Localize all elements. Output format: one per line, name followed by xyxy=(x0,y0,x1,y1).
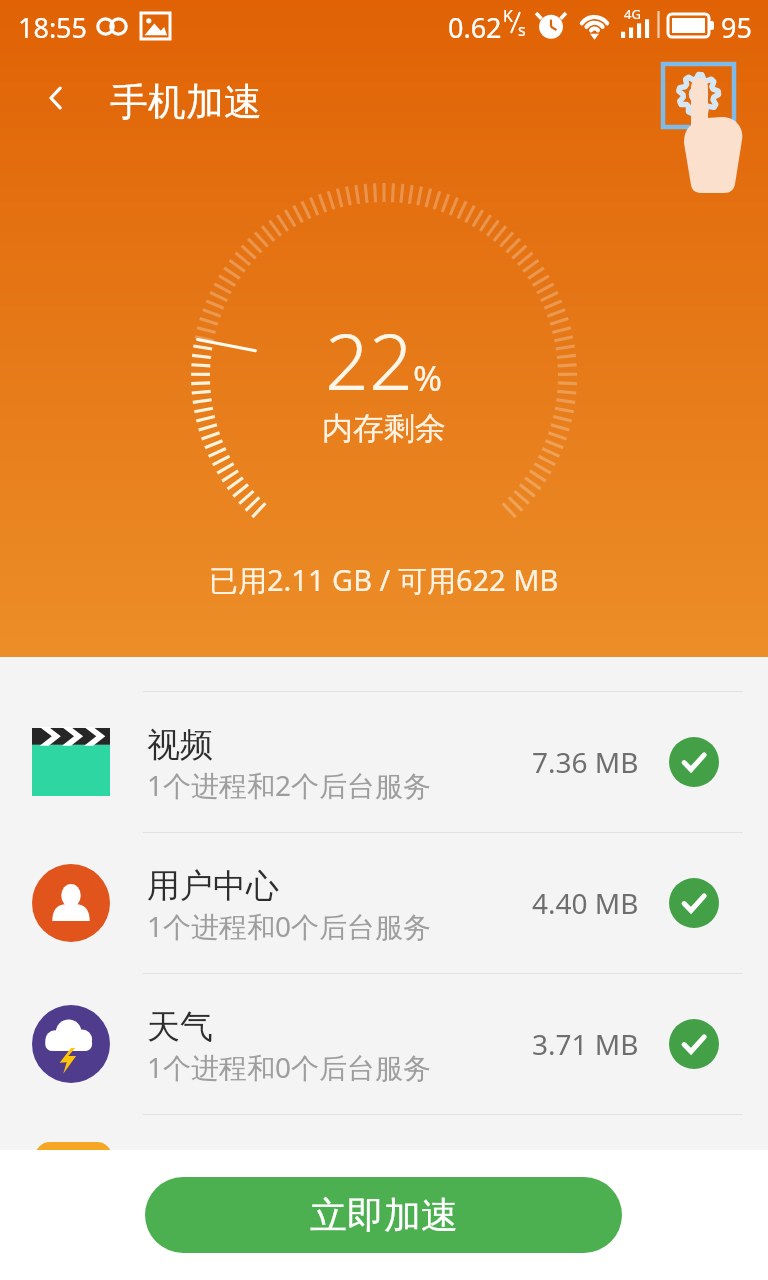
staticText: 用户中心 xyxy=(147,865,279,907)
staticText: 0.62 xyxy=(448,9,502,46)
staticText: 95 xyxy=(721,9,752,46)
staticText: 内存剩余 xyxy=(322,409,446,448)
button[interactable]: Selected, toggle 天气 xyxy=(669,1019,719,1069)
staticText: 3.71 MB xyxy=(532,1025,639,1063)
button[interactable]: Back xyxy=(26,68,86,128)
staticText: % xyxy=(413,354,443,402)
staticText: 视频 xyxy=(147,724,213,766)
button[interactable]: 立即加速 xyxy=(145,1177,622,1253)
staticText: 1个进程和0个后台服务 xyxy=(147,1048,432,1086)
button[interactable]: Selected, toggle 视频 xyxy=(669,737,719,787)
staticText: 18:55 xyxy=(18,9,88,46)
staticText: 7.36 MB xyxy=(532,743,639,781)
staticText: s xyxy=(518,19,526,41)
button[interactable]: Selected, toggle 用户中心 xyxy=(669,878,719,928)
staticText: 立即加速 xyxy=(310,1192,458,1239)
button[interactable]: Settings xyxy=(655,55,768,200)
staticText: 1个进程和2个后台服务 xyxy=(147,766,432,804)
staticText: 22 xyxy=(325,308,413,413)
staticText: 已用2.11 GB / 可用622 MB xyxy=(209,560,559,600)
staticText: 1个进程和0个后台服务 xyxy=(147,907,432,945)
button[interactable]: 用户中心 xyxy=(0,833,768,973)
staticText: K xyxy=(503,5,513,27)
staticText: 手机加速 xyxy=(110,78,262,126)
staticText: 4.40 MB xyxy=(532,884,639,922)
button[interactable]: 天气 xyxy=(0,974,768,1114)
staticText: 天气 xyxy=(147,1006,213,1048)
staticText: 4G xyxy=(624,5,641,23)
button[interactable]: 视频 xyxy=(0,692,768,832)
